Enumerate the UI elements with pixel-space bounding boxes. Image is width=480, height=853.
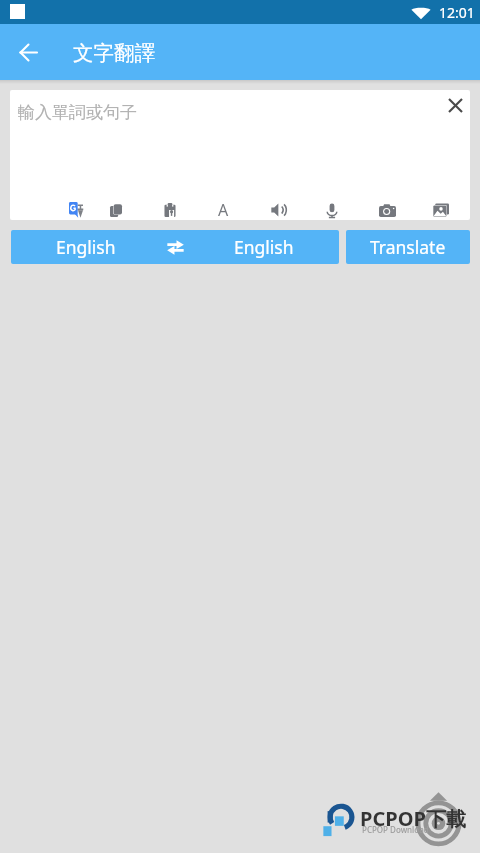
staticText: PCPOP下載 [360, 805, 466, 832]
staticText: Translate [370, 235, 446, 259]
staticText: PCPOP Download [362, 824, 429, 835]
button[interactable]: Paste [151, 191, 189, 220]
button[interactable]: Clear text [435, 90, 470, 120]
button[interactable]: Speak [260, 191, 298, 220]
button[interactable]: Voice input [313, 191, 351, 220]
staticText: 文字翻譯 [73, 40, 155, 66]
staticText: 輸入單詞或句子 [18, 102, 137, 123]
button[interactable]: Text size [204, 191, 242, 220]
staticText: English [234, 235, 294, 259]
button[interactable]: Translate [346, 230, 470, 264]
button[interactable]: Pick image [422, 191, 460, 220]
button[interactable]: Copy [97, 191, 135, 220]
staticText: 12:01 [439, 3, 475, 22]
button[interactable]: English [189, 230, 339, 264]
button[interactable]: Camera [368, 191, 406, 220]
button[interactable]: Back [0, 24, 56, 80]
button[interactable]: Swap languages [161, 230, 189, 264]
staticText: A [218, 199, 229, 220]
button[interactable]: English [11, 230, 161, 264]
staticText: English [56, 235, 116, 259]
button[interactable]: Google translate [57, 191, 95, 220]
